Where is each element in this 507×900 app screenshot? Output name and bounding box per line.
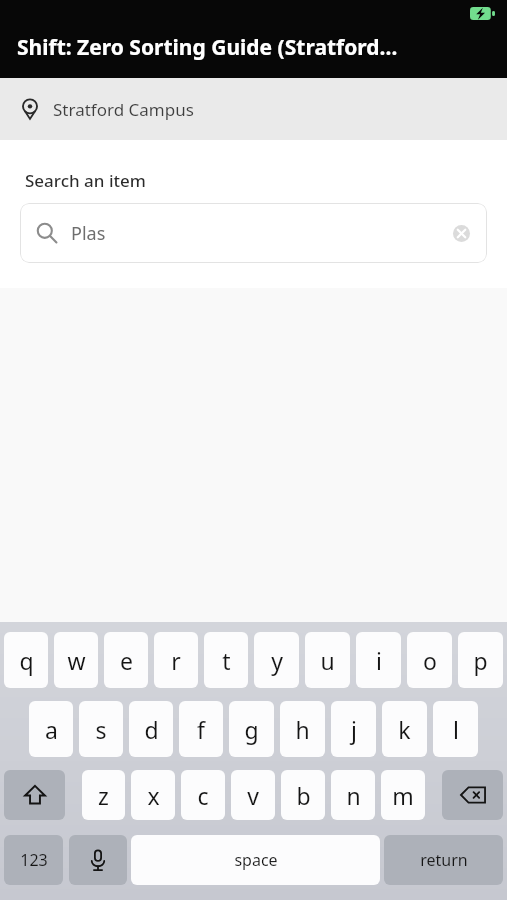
staticText: Search an item xyxy=(25,169,146,192)
button[interactable]: l xyxy=(433,701,478,757)
button[interactable]: space xyxy=(131,835,380,885)
button[interactable]: r xyxy=(154,632,198,688)
button[interactable]: Backspace xyxy=(442,770,503,820)
button[interactable]: p xyxy=(458,632,503,688)
button[interactable]: b xyxy=(281,770,325,820)
staticText: m xyxy=(392,780,414,811)
button[interactable]: Shift xyxy=(4,770,65,820)
button[interactable]: m xyxy=(381,770,425,820)
staticText: z xyxy=(98,780,109,811)
button[interactable]: s xyxy=(79,701,123,757)
staticText: y xyxy=(271,645,283,676)
button[interactable]: d xyxy=(129,701,173,757)
button[interactable]: z xyxy=(82,770,125,820)
staticText: k xyxy=(398,714,411,745)
button[interactable]: Voice input xyxy=(69,835,127,885)
staticText: h xyxy=(295,714,310,745)
staticText: v xyxy=(247,780,259,811)
button[interactable]: n xyxy=(331,770,375,820)
button[interactable]: k xyxy=(382,701,427,757)
button[interactable]: a xyxy=(29,701,73,757)
button[interactable]: return xyxy=(384,835,503,885)
button[interactable]: f xyxy=(179,701,223,757)
staticText: a xyxy=(45,714,58,745)
button[interactable]: i xyxy=(356,632,401,688)
staticText: g xyxy=(244,714,259,745)
staticText: s xyxy=(95,714,107,745)
staticText: c xyxy=(197,780,209,811)
button[interactable]: o xyxy=(407,632,452,688)
staticText: j xyxy=(351,714,357,745)
button[interactable]: e xyxy=(104,632,148,688)
staticText: Plas xyxy=(71,221,106,246)
button[interactable]: g xyxy=(229,701,274,757)
button[interactable]: Clear search xyxy=(449,221,473,245)
other: Battery charging xyxy=(470,7,496,20)
button[interactable]: h xyxy=(280,701,325,757)
staticText: space xyxy=(234,849,278,871)
staticText: Shift: Zero Sorting Guide (Stratford… xyxy=(17,33,398,62)
button[interactable]: j xyxy=(331,701,376,757)
staticText: u xyxy=(320,645,335,676)
button[interactable]: u xyxy=(305,632,350,688)
button[interactable]: w xyxy=(54,632,98,688)
staticText: f xyxy=(197,714,205,745)
staticText: return xyxy=(420,849,468,871)
staticText: q xyxy=(19,645,34,676)
staticText: Stratford Campus xyxy=(53,98,194,121)
staticText: i xyxy=(376,645,382,676)
staticText: b xyxy=(296,780,311,811)
button[interactable]: q xyxy=(4,632,48,688)
staticText: d xyxy=(144,714,159,745)
button[interactable]: Stratford Campus xyxy=(0,78,507,140)
button[interactable]: x xyxy=(131,770,175,820)
staticText: w xyxy=(67,645,86,676)
staticText: e xyxy=(120,645,133,676)
button[interactable]: t xyxy=(204,632,248,688)
staticText: p xyxy=(473,645,488,676)
staticText: o xyxy=(423,645,437,676)
staticText: n xyxy=(346,780,361,811)
staticText: t xyxy=(222,645,231,676)
staticText: x xyxy=(147,780,160,811)
button[interactable]: c xyxy=(181,770,225,820)
button[interactable]: Plas xyxy=(20,203,487,263)
button[interactable]: v xyxy=(231,770,275,820)
button[interactable]: 123 xyxy=(4,835,63,885)
button[interactable]: y xyxy=(254,632,299,688)
staticText: r xyxy=(171,645,181,676)
staticText: l xyxy=(453,714,459,745)
staticText: 123 xyxy=(20,849,48,871)
